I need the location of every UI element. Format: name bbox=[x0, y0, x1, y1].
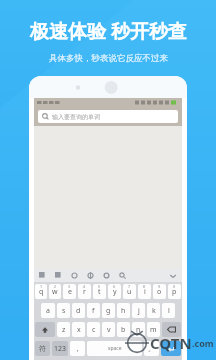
staticText: 极速体验 秒开秒查 bbox=[30, 18, 187, 44]
button[interactable]: Keyboard tool 6 bbox=[119, 272, 126, 279]
staticText: 123 bbox=[54, 344, 67, 354]
staticText: o bbox=[157, 287, 162, 297]
button[interactable]: k bbox=[147, 303, 160, 318]
button[interactable]: h bbox=[117, 303, 130, 318]
button[interactable]: f bbox=[87, 303, 100, 318]
staticText: k bbox=[152, 306, 156, 316]
button[interactable]: 3 bbox=[63, 284, 76, 299]
staticText: h bbox=[121, 306, 126, 316]
button[interactable]: s bbox=[57, 303, 70, 318]
staticText: t bbox=[98, 287, 101, 297]
staticText: 6 bbox=[113, 284, 116, 289]
staticText: 0 bbox=[173, 284, 176, 289]
button[interactable]: j bbox=[132, 303, 145, 318]
staticText: m bbox=[150, 325, 157, 335]
button[interactable]: space bbox=[87, 341, 142, 356]
staticText: 1 bbox=[40, 284, 43, 289]
button[interactable]: 8 bbox=[138, 284, 151, 299]
staticText: 符 bbox=[39, 344, 46, 353]
staticText: y bbox=[113, 287, 117, 297]
staticText: e bbox=[68, 287, 72, 297]
button[interactable]: c bbox=[87, 322, 100, 337]
button[interactable]: Shift bbox=[35, 322, 55, 337]
button[interactable]: n bbox=[132, 322, 145, 337]
button[interactable]: b bbox=[117, 322, 130, 337]
staticText: 3 bbox=[68, 284, 71, 289]
button[interactable]: d bbox=[72, 303, 85, 318]
button[interactable]: 5 bbox=[93, 284, 106, 299]
staticText: 4 bbox=[83, 284, 86, 289]
button[interactable]: 0 bbox=[168, 284, 181, 299]
staticText: 。 bbox=[148, 344, 155, 353]
staticText: j bbox=[138, 306, 140, 316]
staticText: space bbox=[108, 345, 122, 352]
staticText: q bbox=[39, 287, 44, 297]
button[interactable]: Keyboard tool 1 bbox=[39, 272, 46, 279]
button[interactable]: 123 bbox=[52, 341, 68, 356]
staticText: 8 bbox=[143, 284, 146, 289]
button[interactable]: 4 bbox=[78, 284, 91, 299]
button[interactable]: ， bbox=[70, 341, 85, 356]
button[interactable]: Keyboard tool 5 bbox=[103, 272, 110, 279]
button[interactable]: Enter bbox=[161, 341, 181, 356]
button[interactable]: v bbox=[102, 322, 115, 337]
button[interactable]: 7 bbox=[123, 284, 136, 299]
staticText: u bbox=[127, 287, 132, 297]
button[interactable]: 符 bbox=[35, 341, 50, 356]
staticText: g bbox=[106, 306, 111, 316]
staticText: CQTN bbox=[150, 333, 192, 353]
staticText: 9 bbox=[158, 284, 161, 289]
staticText: p bbox=[172, 287, 177, 297]
staticText: 具体多快，秒表说它反应不过来 bbox=[49, 53, 168, 64]
button[interactable]: m bbox=[147, 322, 160, 337]
staticText: .com bbox=[192, 337, 214, 349]
staticText: s bbox=[62, 306, 66, 316]
staticText: r bbox=[83, 287, 86, 297]
staticText: l bbox=[168, 306, 170, 316]
staticText: 2 bbox=[54, 284, 57, 289]
button[interactable]: Keyboard tool 3 bbox=[71, 272, 78, 279]
button[interactable]: 输入要查询的单词 bbox=[38, 110, 178, 123]
button[interactable]: 2 bbox=[49, 284, 61, 299]
staticText: x bbox=[77, 325, 81, 335]
staticText: f bbox=[92, 306, 95, 316]
staticText: i bbox=[144, 287, 146, 297]
button[interactable]: g bbox=[102, 303, 115, 318]
button[interactable]: Keyboard tool 4 bbox=[87, 272, 94, 279]
staticText: 7 bbox=[128, 284, 131, 289]
button[interactable]: Hide keyboard bbox=[169, 272, 177, 280]
staticText: 5 bbox=[98, 284, 101, 289]
staticText: ， bbox=[74, 344, 81, 353]
staticText: b bbox=[121, 325, 126, 335]
button[interactable]: Backspace bbox=[162, 322, 181, 337]
staticText: c bbox=[92, 325, 96, 335]
button[interactable]: Keyboard tool 2 bbox=[55, 272, 62, 279]
button[interactable]: x bbox=[72, 322, 85, 337]
staticText: 输入要查询的单词 bbox=[52, 113, 100, 121]
staticText: n bbox=[136, 325, 141, 335]
staticText: w bbox=[52, 287, 58, 297]
button[interactable]: z bbox=[57, 322, 70, 337]
button[interactable]: 6 bbox=[108, 284, 121, 299]
staticText: v bbox=[107, 325, 111, 335]
staticText: d bbox=[76, 306, 81, 316]
button[interactable]: l bbox=[162, 303, 175, 318]
button[interactable]: a bbox=[41, 303, 55, 318]
staticText: a bbox=[46, 306, 50, 316]
button[interactable]: 。 bbox=[144, 341, 159, 356]
button[interactable]: 1 bbox=[35, 284, 47, 299]
button[interactable]: 9 bbox=[153, 284, 166, 299]
staticText: z bbox=[62, 325, 66, 335]
